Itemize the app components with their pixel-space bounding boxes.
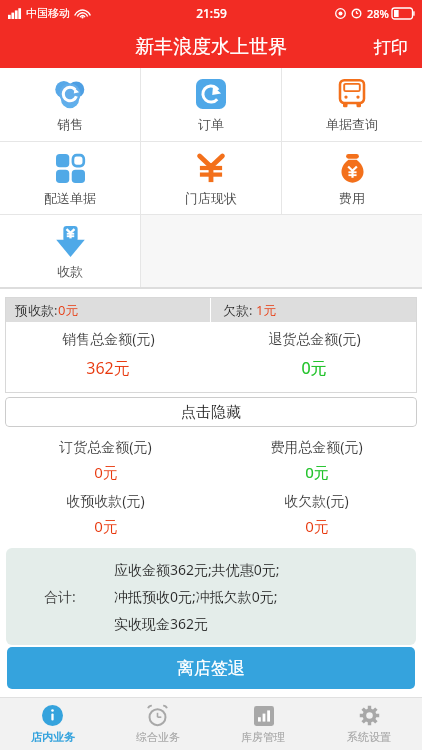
staticText: 销售总金额(元) xyxy=(62,329,155,348)
staticText: 综合业务 xyxy=(136,730,180,744)
staticText: 费用 xyxy=(339,190,365,206)
other: 系统设置 xyxy=(359,705,380,726)
other: 收款 xyxy=(55,226,86,257)
other: 综合业务 xyxy=(147,705,168,726)
staticText: 退货总金额(元) xyxy=(268,329,361,348)
staticText: 费用总金额(元) xyxy=(270,437,363,456)
other: 销售 xyxy=(54,78,86,110)
staticText: 362元 xyxy=(86,357,130,379)
staticText: 应收金额362元;共优惠0元; xyxy=(114,560,280,579)
button[interactable]: 点击隐藏 xyxy=(5,397,417,427)
staticText: 0元 xyxy=(301,357,327,379)
staticText: 28% xyxy=(367,6,389,21)
staticText: 订单 xyxy=(198,116,224,132)
staticText: 库房管理 xyxy=(241,730,285,744)
staticText: 欠款: xyxy=(223,301,256,319)
staticText: 0元 xyxy=(94,516,118,536)
button[interactable]: 打印 xyxy=(360,26,422,68)
staticText: 0元 xyxy=(94,462,118,482)
staticText: 店内业务 xyxy=(31,730,75,744)
staticText: 0元 xyxy=(305,462,329,482)
button[interactable]: 离店签退 xyxy=(7,647,415,689)
other: 店内业务 xyxy=(42,705,63,726)
staticText: 离店签退 xyxy=(177,658,245,679)
staticText: 中国移动 xyxy=(26,6,70,20)
staticText: 0元 xyxy=(58,301,79,319)
other: 单据查询 xyxy=(337,79,367,109)
button[interactable]: 销售 xyxy=(0,68,140,141)
other: 库房管理 xyxy=(254,706,274,726)
staticText: 单据查询 xyxy=(326,116,378,132)
button[interactable]: 综合业务 xyxy=(105,698,210,750)
button[interactable]: 门店现状 xyxy=(141,142,281,214)
staticText: 合计: xyxy=(44,587,76,606)
staticText: 收欠款(元) xyxy=(284,491,349,510)
other: 配送单据 xyxy=(56,154,85,183)
button[interactable]: 店内业务 xyxy=(0,698,105,750)
staticText: 实收现金362元 xyxy=(114,614,209,633)
staticText: 0元 xyxy=(305,516,329,536)
button[interactable]: 收款 xyxy=(0,215,140,287)
staticText: 预收款: xyxy=(15,301,58,319)
button[interactable]: 配送单据 xyxy=(0,142,140,214)
button[interactable]: 单据查询 xyxy=(282,68,422,141)
other: 订单 xyxy=(196,79,226,109)
staticText: 收款 xyxy=(57,263,83,279)
staticText: 系统设置 xyxy=(347,730,391,744)
staticText: 收预收款(元) xyxy=(66,491,145,510)
staticText: 冲抵预收0元;冲抵欠款0元; xyxy=(114,587,278,606)
staticText: 配送单据 xyxy=(44,190,96,206)
staticText: 销售 xyxy=(57,116,83,132)
staticText: 订货总金额(元) xyxy=(59,437,152,456)
other: 门店现状 xyxy=(196,153,226,183)
button[interactable]: 订单 xyxy=(141,68,281,141)
staticText: 1元 xyxy=(256,301,277,319)
button[interactable]: 库房管理 xyxy=(210,698,316,750)
staticText: 门店现状 xyxy=(185,190,237,206)
button[interactable]: 系统设置 xyxy=(316,698,422,750)
button[interactable]: 费用 xyxy=(282,142,422,214)
other: 费用 xyxy=(338,154,367,183)
staticText: 21:59 xyxy=(196,5,227,21)
staticText: 打印 xyxy=(374,37,408,58)
staticText: 点击隐藏 xyxy=(181,403,241,422)
staticText: 新丰浪度水上世界 xyxy=(135,35,287,59)
